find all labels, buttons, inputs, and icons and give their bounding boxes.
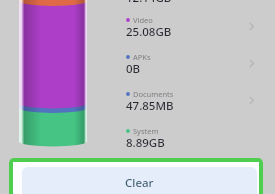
staticText: Documents bbox=[133, 89, 174, 99]
staticText: 8.89GB bbox=[126, 135, 165, 151]
other: Open Video details bbox=[247, 22, 256, 31]
staticText: System bbox=[133, 126, 159, 136]
button[interactable]: Video bbox=[124, 8, 264, 45]
staticText: Clear bbox=[125, 175, 154, 191]
button[interactable]: Clear bbox=[22, 167, 257, 194]
other: Open Documents details bbox=[247, 96, 256, 105]
staticText: 25.08GB bbox=[126, 24, 172, 40]
staticText: 47.85MB bbox=[126, 98, 174, 114]
staticText: 0B bbox=[126, 61, 141, 77]
staticText: 12.14GB bbox=[126, 0, 172, 6]
button[interactable]: System bbox=[124, 119, 264, 156]
button[interactable]: Documents bbox=[124, 82, 264, 119]
other: Open APKs details bbox=[247, 59, 256, 68]
staticText: Video bbox=[133, 15, 153, 25]
button[interactable]: APKs bbox=[124, 45, 264, 82]
staticText: APKs bbox=[133, 52, 151, 62]
button[interactable]: 12.14GB bbox=[124, 0, 264, 11]
